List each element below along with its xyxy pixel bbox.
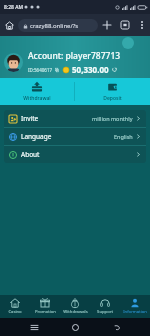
button[interactable]: Profile avatar (4, 53, 23, 72)
staticText: Language (21, 132, 52, 141)
button[interactable]: Home (67, 319, 83, 335)
button[interactable]: New tab (98, 16, 116, 34)
staticText: Withdrawal (23, 95, 51, 102)
staticText: Account: player787713 (28, 50, 121, 62)
button[interactable]: Support (90, 295, 120, 318)
staticText: Invite (21, 114, 39, 123)
button[interactable]: Invite (4, 110, 146, 127)
button[interactable]: Deposit (75, 78, 150, 105)
staticText: Casino (8, 309, 22, 315)
button[interactable]: Withdrawal (0, 78, 74, 105)
staticText: Support (97, 309, 113, 315)
staticText: Withdrawals (63, 309, 88, 315)
staticText: About (21, 150, 40, 159)
staticText: million monthly (92, 115, 133, 122)
button[interactable]: Information (120, 295, 150, 318)
staticText: ID:5640617 (28, 67, 53, 73)
button[interactable]: Home (0, 16, 18, 34)
button[interactable]: Promotion (30, 295, 60, 318)
staticText: Information (123, 309, 147, 315)
staticText: crazy88.online/?s (30, 22, 79, 30)
button[interactable]: Casino (0, 295, 30, 318)
staticText: Promotion (35, 309, 56, 315)
staticText: English (114, 133, 133, 140)
button[interactable]: About (4, 146, 146, 163)
button[interactable]: Recents (26, 319, 42, 335)
staticText: Deposit (103, 95, 122, 102)
button[interactable]: More options (134, 17, 150, 33)
staticText: 8:28 AM (4, 4, 24, 11)
button[interactable]: Language (4, 128, 146, 145)
button[interactable]: Withdrawals (60, 295, 90, 318)
button[interactable]: Back (109, 319, 125, 335)
button[interactable]: crazy88.online/?s (18, 19, 98, 32)
staticText: 50,330.00 (72, 64, 109, 75)
button[interactable]: Tabs (116, 16, 134, 34)
